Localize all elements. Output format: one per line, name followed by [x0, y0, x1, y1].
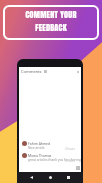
staticText: Miana Thomas: [28, 153, 52, 158]
staticText: COMMENT YOUR: [25, 8, 77, 20]
staticText: FEEDBACK: [35, 21, 67, 33]
staticText: Nice article: [28, 146, 45, 150]
button[interactable]: Back: [27, 173, 36, 182]
staticText: 2 hours: [65, 147, 75, 151]
staticText: Comments: [21, 69, 42, 74]
button[interactable]: Home: [46, 173, 55, 182]
button[interactable]: Comments: [19, 67, 81, 76]
staticText: great articles thank you for sharing: [28, 158, 81, 162]
button[interactable]: Miana Thomas: [19, 151, 81, 163]
button[interactable]: Fahim Ahmed: [19, 139, 81, 151]
staticText: Fahim Ahmed: [28, 141, 51, 146]
staticText: 3 hours: [65, 159, 75, 163]
button[interactable]: Recent apps: [64, 173, 73, 182]
